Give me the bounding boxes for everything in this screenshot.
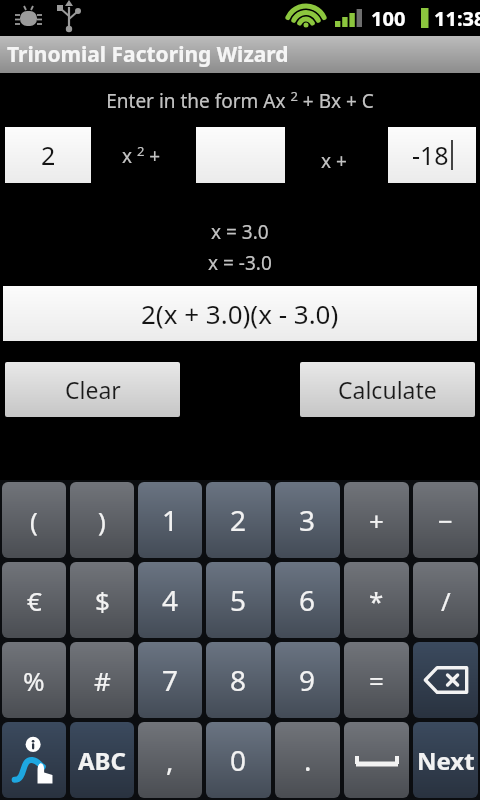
- button[interactable]: 2: [5, 127, 91, 183]
- staticText: 2: [230, 501, 247, 539]
- button[interactable]: €: [2, 562, 66, 638]
- button[interactable]: ,: [138, 722, 202, 798]
- staticText: 8: [230, 661, 247, 699]
- button[interactable]: (: [2, 482, 66, 558]
- staticText: 100: [371, 5, 406, 32]
- button[interactable]: 2(x + 3.0)(x - 3.0): [3, 286, 477, 341]
- button[interactable]: #: [70, 642, 134, 718]
- staticText: 3: [299, 501, 316, 539]
- button[interactable]: ABC: [70, 722, 134, 798]
- staticText: x = -3.0: [208, 250, 272, 276]
- staticText: 2: [41, 138, 56, 172]
- staticText: *: [369, 583, 384, 618]
- staticText: %: [23, 663, 45, 698]
- button[interactable]: %: [2, 642, 66, 718]
- button[interactable]: 6: [275, 562, 340, 638]
- staticText: x 2 +: [122, 142, 161, 168]
- staticText: Calculate: [338, 374, 437, 405]
- staticText: 7: [162, 661, 179, 699]
- button[interactable]: -18: [388, 127, 476, 183]
- staticText: =: [369, 663, 384, 698]
- button[interactable]: 7: [138, 642, 202, 718]
- staticText: 9: [299, 661, 316, 699]
- button[interactable]: Clear: [5, 362, 180, 417]
- staticText: 5: [230, 581, 247, 619]
- staticText: ): [98, 503, 106, 538]
- button[interactable]: 4: [138, 562, 202, 638]
- button[interactable]: 1: [138, 482, 202, 558]
- button[interactable]: 0: [206, 722, 271, 798]
- button[interactable]: [196, 127, 285, 183]
- staticText: 11:38: [434, 5, 480, 32]
- staticText: +: [369, 503, 384, 538]
- button[interactable]: ): [70, 482, 134, 558]
- button[interactable]: Calculate: [300, 362, 475, 417]
- button[interactable]: Gesture typing help: [2, 722, 66, 798]
- button[interactable]: .: [275, 722, 340, 798]
- staticText: 2(x + 3.0)(x - 3.0): [141, 296, 339, 331]
- staticText: 1: [162, 501, 179, 539]
- staticText: x +: [321, 148, 347, 174]
- staticText: (: [30, 503, 38, 538]
- button[interactable]: *: [344, 562, 409, 638]
- button[interactable]: 2: [206, 482, 271, 558]
- staticText: 4: [162, 581, 179, 619]
- button[interactable]: 9: [275, 642, 340, 718]
- button[interactable]: $: [70, 562, 134, 638]
- button[interactable]: Backspace: [413, 642, 478, 718]
- staticText: €: [27, 583, 42, 618]
- staticText: $: [95, 583, 110, 618]
- button[interactable]: 3: [275, 482, 340, 558]
- staticText: 6: [299, 581, 316, 619]
- staticText: -18: [412, 138, 449, 172]
- staticText: 0: [230, 741, 247, 779]
- staticText: ,: [166, 741, 174, 779]
- staticText: Trinomial Factoring Wizard: [7, 40, 289, 69]
- staticText: #: [94, 663, 111, 698]
- button[interactable]: 8: [206, 642, 271, 718]
- button[interactable]: Space: [344, 722, 409, 798]
- button[interactable]: Next: [413, 722, 478, 798]
- staticText: Clear: [65, 374, 121, 405]
- staticText: −: [438, 503, 453, 538]
- staticText: Enter in the form Ax 2 + Bx + C: [106, 87, 374, 113]
- staticText: ABC: [78, 744, 126, 777]
- staticText: x = 3.0: [211, 219, 269, 245]
- button[interactable]: /: [413, 562, 478, 638]
- staticText: Next: [417, 744, 475, 777]
- staticText: /: [441, 583, 451, 618]
- button[interactable]: −: [413, 482, 478, 558]
- button[interactable]: 5: [206, 562, 271, 638]
- staticText: .: [304, 741, 312, 779]
- button[interactable]: +: [344, 482, 409, 558]
- button[interactable]: =: [344, 642, 409, 718]
